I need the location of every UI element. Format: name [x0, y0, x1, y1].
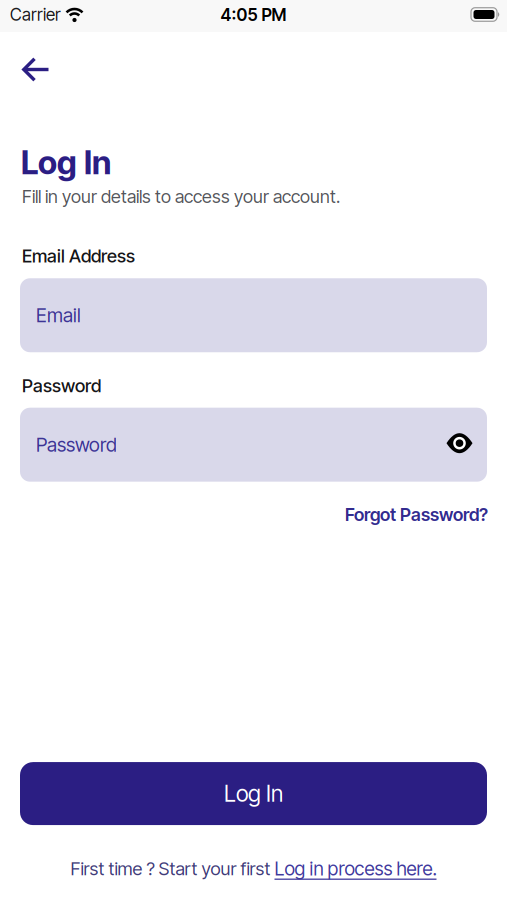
button[interactable] — [446, 435, 472, 455]
staticText: Carrier — [10, 4, 61, 25]
staticText: Log In — [224, 780, 283, 807]
staticText: Log In — [21, 142, 111, 182]
staticText: Fill in your details to access your acco… — [22, 185, 340, 207]
button[interactable]: Log In — [20, 762, 487, 825]
staticText: First time ? Start your first — [70, 857, 274, 880]
button[interactable] — [0, 32, 49, 82]
button[interactable]: Log in process here. — [274, 857, 436, 880]
staticText: Email Address — [22, 245, 135, 267]
staticText: Email — [36, 304, 81, 327]
staticText: Password — [36, 433, 117, 456]
button[interactable]: Forgot Password? — [345, 504, 488, 525]
staticText: Password — [22, 375, 101, 397]
staticText: 4:05 PM — [220, 4, 286, 25]
staticText: Forgot Password? — [345, 504, 488, 525]
staticText: Log in process here. — [274, 857, 436, 880]
